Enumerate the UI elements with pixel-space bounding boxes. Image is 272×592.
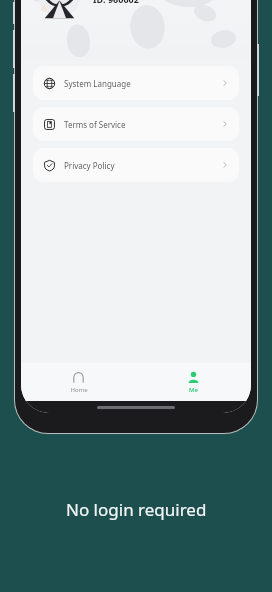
button[interactable]: System Language [33,66,239,100]
staticText: Me [189,386,198,394]
staticText: No login required [66,498,207,521]
button[interactable]: Home [21,363,136,401]
button[interactable]: Privacy Policy [33,148,239,182]
staticText: ID: 960002 [93,0,139,5]
button[interactable]: Terms of Service [33,107,239,141]
button[interactable]: ID: 960002 [39,0,251,19]
staticText: Terms of Service [64,119,126,130]
button[interactable]: Me [136,363,251,401]
staticText: Home [70,386,88,394]
staticText: Privacy Policy [64,160,115,171]
staticText: System Language [64,78,131,89]
